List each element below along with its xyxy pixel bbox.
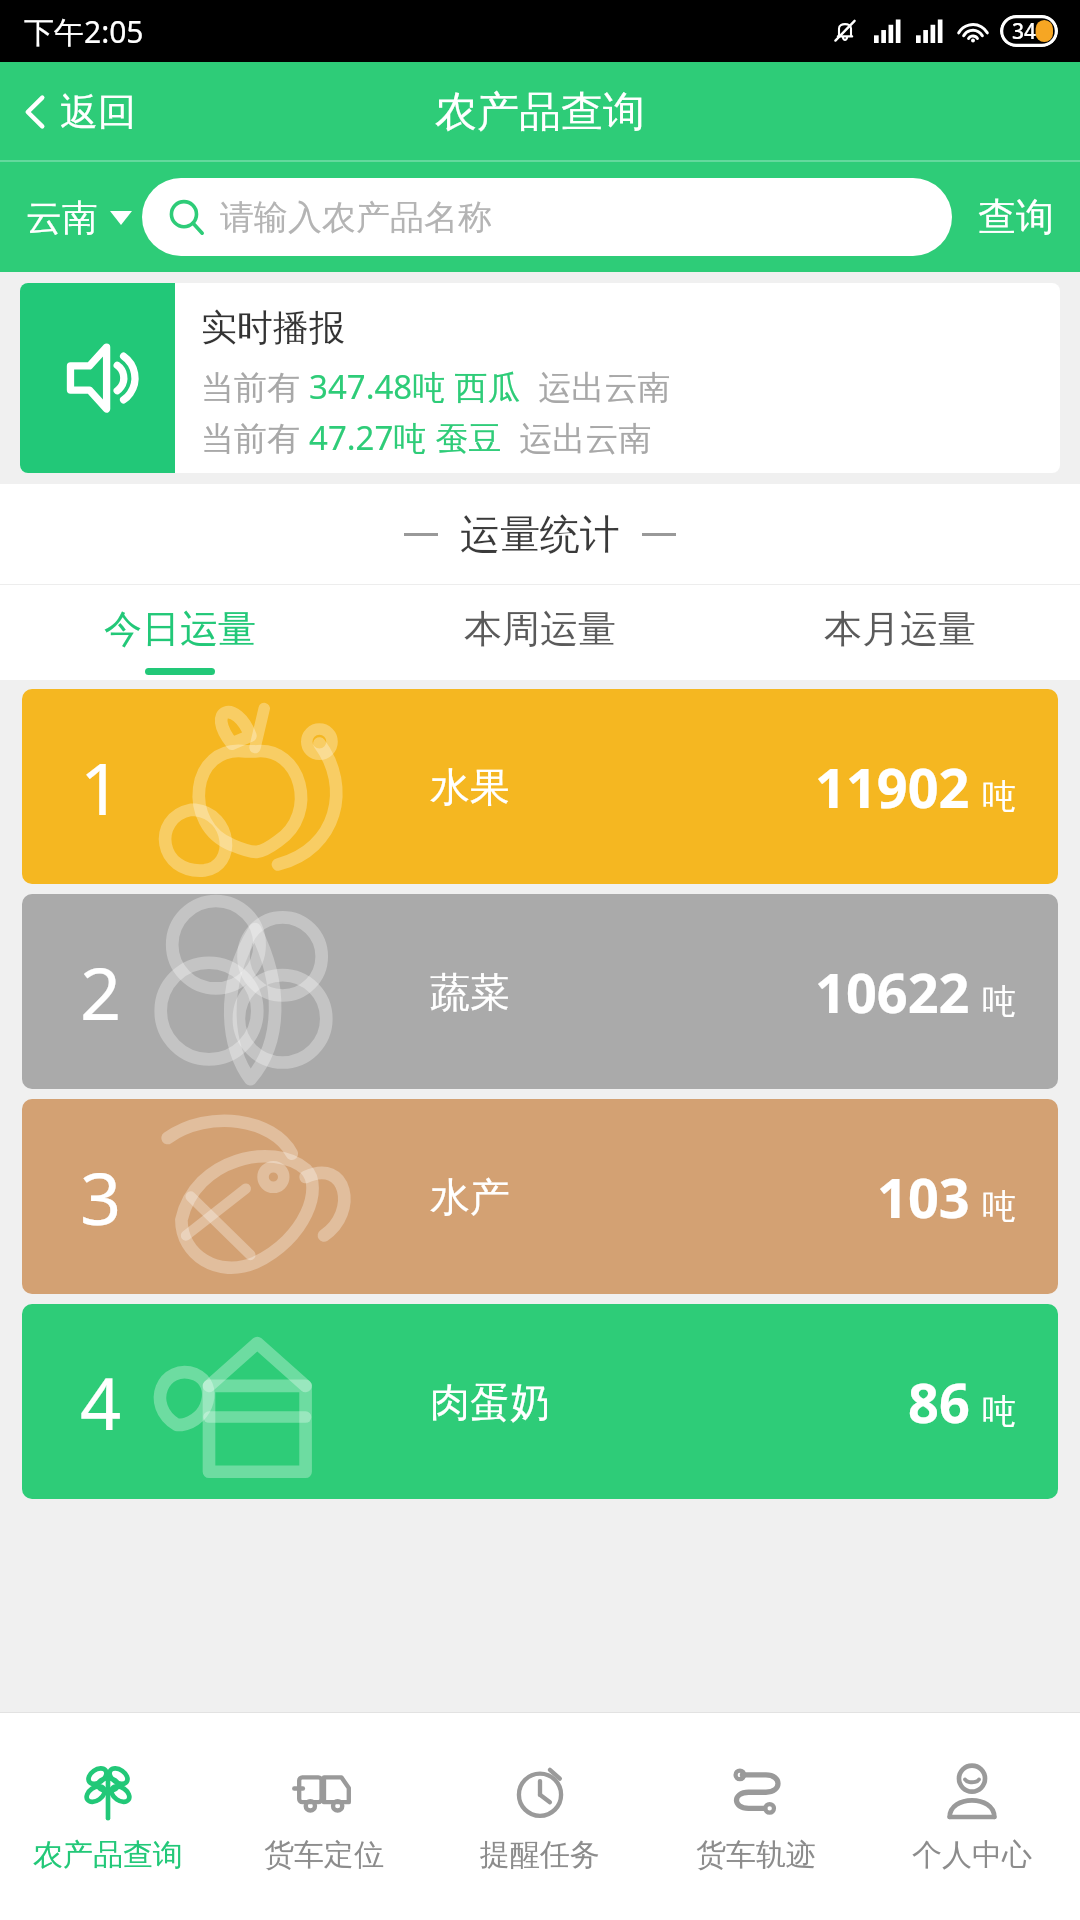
button[interactable]: 2 — [22, 894, 1058, 1089]
staticText: 11902 — [815, 750, 970, 824]
button[interactable]: 本周运量 — [360, 585, 720, 680]
staticText: 103 — [877, 1160, 970, 1234]
staticText: 当前有 — [201, 364, 309, 409]
button[interactable]: 4 — [22, 1304, 1058, 1499]
staticText: 吨 — [982, 980, 1016, 1023]
staticText: 查询 — [978, 193, 1054, 241]
staticText: 当前有 — [201, 415, 309, 460]
button[interactable]: 1 — [22, 689, 1058, 884]
staticText: 本周运量 — [464, 605, 616, 653]
button[interactable]: 本月运量 — [720, 585, 1080, 680]
staticText: 云南 — [26, 195, 98, 240]
staticText: 肉蛋奶 — [430, 1377, 550, 1427]
staticText: 提醒任务 — [480, 1836, 600, 1874]
staticText: 运出云南 — [511, 415, 652, 460]
button[interactable]: 货车轨迹 — [648, 1713, 864, 1920]
button[interactable]: 今日运量 — [0, 585, 360, 680]
staticText: 蔬菜 — [430, 967, 510, 1017]
button[interactable]: 查询 — [952, 175, 1080, 259]
staticText: 2 — [80, 943, 122, 1041]
staticText: 3 — [80, 1148, 122, 1246]
button[interactable]: 货车定位 — [216, 1713, 432, 1920]
staticText: 10622 — [815, 955, 970, 1029]
staticText: 农产品查询 — [435, 86, 645, 139]
staticText: 实时播报 — [201, 305, 345, 350]
staticText: 下午2:05 — [24, 11, 144, 52]
staticText: 吨 — [982, 1390, 1016, 1433]
staticText: 吨 — [982, 1185, 1016, 1228]
staticText: 农产品查询 — [33, 1836, 183, 1874]
button[interactable]: 3 — [22, 1099, 1058, 1294]
staticText: 今日运量 — [104, 605, 256, 653]
button[interactable]: 实时播报 — [20, 283, 1060, 473]
staticText: 运量统计 — [460, 509, 620, 559]
staticText: 吨 — [982, 775, 1016, 818]
staticText: 水产 — [430, 1172, 510, 1222]
button[interactable]: 云南 — [0, 179, 142, 256]
staticText: 347.48吨 — [309, 364, 446, 409]
staticText: 蚕豆 — [427, 415, 511, 460]
staticText: 个人中心 — [912, 1836, 1032, 1874]
button[interactable]: 返回 — [0, 62, 154, 162]
staticText: 86 — [908, 1365, 970, 1439]
staticText: 返回 — [60, 88, 136, 136]
staticText: 水果 — [430, 762, 510, 812]
staticText: 请输入农产品名称 — [220, 196, 492, 239]
staticText: 西瓜 — [446, 364, 530, 409]
staticText: 货车轨迹 — [696, 1836, 816, 1874]
staticText: 47.27吨 — [309, 415, 427, 460]
staticText: 货车定位 — [264, 1836, 384, 1874]
button[interactable]: 个人中心 — [864, 1713, 1080, 1920]
staticText: 运出云南 — [530, 364, 671, 409]
button[interactable]: 农产品查询 — [0, 1713, 216, 1920]
staticText: 1 — [80, 738, 122, 836]
button[interactable]: 请输入农产品名称 — [142, 178, 952, 256]
button[interactable]: 提醒任务 — [432, 1713, 648, 1920]
staticText: 4 — [80, 1353, 122, 1451]
staticText: 本月运量 — [824, 605, 976, 653]
staticText: 34 — [1012, 17, 1037, 46]
